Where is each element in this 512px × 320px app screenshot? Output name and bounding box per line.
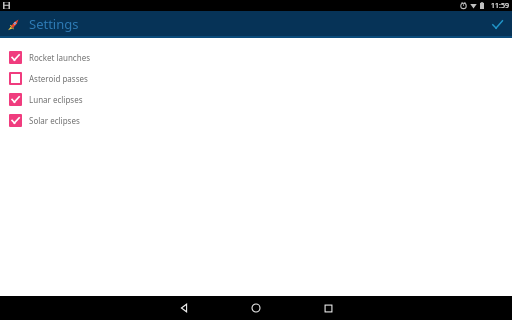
button[interactable]: Back: [161, 296, 207, 320]
staticText: Lunar eclipses: [29, 94, 83, 105]
button[interactable]: Rocket launches: [0, 47, 512, 68]
staticText: 11:59: [491, 1, 509, 11]
button[interactable]: Lunar eclipses: [0, 89, 512, 110]
button[interactable]: Recent apps: [305, 296, 351, 320]
staticText: Asteroid passes: [29, 73, 88, 84]
button[interactable]: Solar eclipses: [0, 110, 512, 131]
staticText: Settings: [29, 15, 79, 33]
staticText: Rocket launches: [29, 52, 90, 63]
button[interactable]: Asteroid passes: [0, 68, 512, 89]
button[interactable]: Done: [486, 13, 508, 35]
button[interactable]: Home: [233, 296, 279, 320]
staticText: Solar eclipses: [29, 115, 80, 126]
